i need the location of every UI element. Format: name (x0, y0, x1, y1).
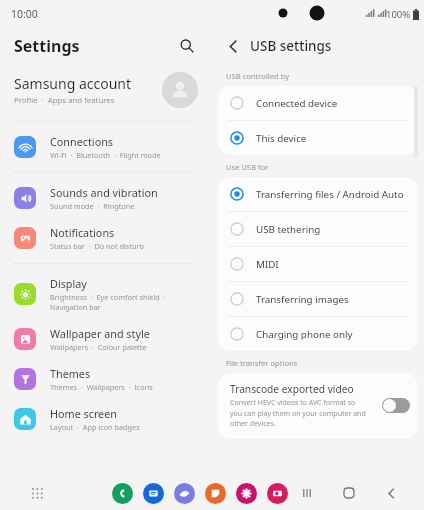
button[interactable]: Charging phone only (218, 317, 418, 351)
button[interactable]: Search (174, 33, 200, 59)
button[interactable]: Samsung account (0, 64, 212, 116)
button[interactable]: Notifications (0, 218, 212, 258)
staticText: Transferring images (256, 293, 349, 306)
staticText: Use USB for (226, 162, 269, 172)
staticText: Connections (50, 134, 114, 149)
staticText: Home screen (50, 406, 117, 421)
staticText: Status bar · Do not disturb (50, 241, 145, 251)
button[interactable]: Display (0, 269, 212, 319)
staticText: Transferring files / Android Auto (256, 188, 404, 201)
staticText: Sounds and vibration (50, 185, 158, 200)
button[interactable]: Phone (112, 483, 133, 504)
staticText: Wallpaper and style (50, 326, 150, 341)
button[interactable]: Notes (205, 483, 226, 504)
button[interactable]: Transcode exported video, off (382, 398, 410, 413)
staticText: Navigation bar (50, 302, 101, 312)
staticText: Profile · Apps and features (14, 95, 115, 106)
staticText: Convert HEVC videos to AVC format so you… (230, 398, 366, 428)
staticText: Connected device (256, 97, 338, 110)
staticText: Settings (14, 35, 80, 57)
button[interactable]: Themes (0, 359, 212, 399)
button[interactable]: This device (218, 121, 418, 155)
staticText: Sound mode · Ringtone (50, 201, 135, 211)
button[interactable]: Transcode exported video (218, 373, 418, 439)
staticText: Charging phone only (256, 328, 353, 341)
button[interactable]: Camera (267, 483, 288, 504)
button[interactable]: Home screen (0, 399, 212, 439)
button[interactable]: Sounds and vibration (0, 178, 212, 218)
button[interactable]: MIDI (218, 247, 418, 281)
staticText: Brightness · Eye comfort shield · (50, 292, 166, 302)
staticText: Themes · Wallpapers · Icons (50, 382, 153, 392)
staticText: Samsung account (14, 74, 132, 93)
staticText: File transfer options (226, 358, 298, 368)
staticText: 100% (386, 8, 411, 21)
staticText: Notifications (50, 225, 115, 240)
button[interactable]: Connections (0, 127, 212, 167)
staticText: Display (50, 276, 87, 291)
button[interactable]: USB tethering (218, 212, 418, 246)
staticText: Layout · App icon badges (50, 422, 140, 432)
staticText: MIDI (256, 258, 279, 271)
staticText: This device (256, 132, 307, 145)
staticText: USB tethering (256, 223, 321, 236)
button[interactable]: Home (338, 482, 360, 504)
staticText: USB settings (250, 37, 332, 55)
button[interactable]: Transferring files / Android Auto (218, 177, 418, 211)
button[interactable]: Back (221, 34, 245, 58)
button[interactable]: Messages (143, 483, 164, 504)
button[interactable]: Wallpaper and style (0, 319, 212, 359)
staticText: Wi-Fi · Bluetooth · Flight mode (50, 150, 161, 160)
staticText: Wallpapers · Colour palette (50, 342, 147, 352)
button[interactable]: Galaxy Store (236, 483, 257, 504)
button[interactable]: Recent apps (296, 482, 318, 504)
button[interactable]: Apps (26, 482, 48, 504)
button[interactable]: Transferring images (218, 282, 418, 316)
button[interactable]: Connected device (218, 86, 418, 120)
staticText: Transcode exported video (230, 382, 354, 396)
staticText: USB controlled by (226, 71, 290, 81)
staticText: 10:00 (11, 7, 38, 21)
button[interactable]: Back (380, 482, 402, 504)
staticText: Themes (50, 366, 91, 381)
button[interactable]: Internet (174, 483, 195, 504)
